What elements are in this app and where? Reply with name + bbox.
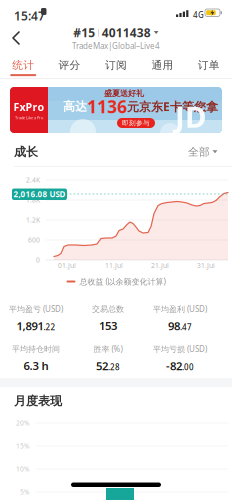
staticText: 31.Jul bbox=[197, 261, 215, 270]
staticText: 总收益 (以余额变化计算) bbox=[79, 276, 165, 287]
button[interactable]: 订单 bbox=[186, 52, 232, 78]
button[interactable]: 全部 bbox=[188, 145, 218, 158]
staticText: 11.Jul bbox=[105, 261, 123, 270]
staticText: 评分 bbox=[59, 59, 81, 72]
staticText: 月度表现 bbox=[14, 394, 62, 408]
staticText: TradeMax|Global–Live4 bbox=[72, 41, 160, 51]
staticText: 胜率 (%) bbox=[93, 343, 122, 354]
staticText: 15% bbox=[16, 442, 30, 450]
staticText: 1.8K bbox=[26, 196, 40, 204]
staticText: 52.28 bbox=[96, 358, 120, 373]
button[interactable]: FxPro bbox=[10, 87, 222, 133]
staticText: 交易总数 bbox=[92, 304, 124, 314]
staticText: 20% bbox=[16, 419, 30, 427]
staticText: JD bbox=[175, 97, 206, 136]
staticText: 订单 bbox=[198, 59, 220, 72]
staticText: 平均持仓时间 bbox=[12, 344, 60, 354]
staticText: 平均亏损 (USD) bbox=[153, 343, 207, 354]
button[interactable]: 订阅 bbox=[93, 52, 139, 78]
staticText: 全部 bbox=[188, 145, 210, 158]
staticText: 通用 bbox=[151, 59, 173, 72]
staticText: 订阅 bbox=[105, 59, 127, 72]
staticText: 即刻参与 bbox=[122, 119, 150, 127]
staticText: 21.Jul bbox=[151, 261, 169, 270]
staticText: 153 bbox=[99, 318, 117, 333]
staticText: 元京东E卡等您拿 bbox=[127, 98, 218, 115]
staticText: 高达 bbox=[63, 99, 87, 114]
staticText: FxPro bbox=[13, 100, 44, 114]
staticText: 盛夏送好礼 bbox=[104, 88, 144, 98]
staticText: 15:47 bbox=[14, 8, 45, 24]
staticText: 平均盈亏 (USD) bbox=[9, 303, 63, 314]
button[interactable]: 通用 bbox=[139, 52, 186, 78]
button[interactable]: 评分 bbox=[46, 52, 93, 78]
staticText: 01.Jul bbox=[58, 261, 76, 270]
staticText: 4G bbox=[193, 9, 204, 20]
staticText: 1136 bbox=[87, 95, 127, 118]
staticText: 5% bbox=[20, 488, 30, 496]
staticText: 平均盈利 (USD) bbox=[153, 303, 207, 314]
staticText: 成长 bbox=[14, 145, 38, 159]
staticText: 1.2K bbox=[26, 216, 40, 224]
staticText: 2.4K bbox=[26, 176, 40, 184]
staticText: 10% bbox=[16, 465, 30, 473]
staticText: #15 bbox=[73, 25, 95, 41]
staticText: 统计 bbox=[12, 59, 34, 72]
staticText: Trade Like a Pro bbox=[15, 115, 43, 120]
staticText: 600 bbox=[28, 236, 40, 244]
staticText: 6.3 h bbox=[23, 358, 48, 373]
staticText: 4011438 bbox=[102, 25, 151, 41]
staticText: 98.47 bbox=[168, 318, 192, 333]
staticText: 2,016.08 USD bbox=[13, 189, 65, 199]
button[interactable]: #15 bbox=[0, 24, 160, 50]
staticText: 1,891.22 bbox=[16, 318, 55, 333]
button[interactable]: 统计 bbox=[0, 52, 46, 78]
staticText: 0 bbox=[36, 256, 40, 264]
staticText: -82.00 bbox=[166, 358, 194, 373]
